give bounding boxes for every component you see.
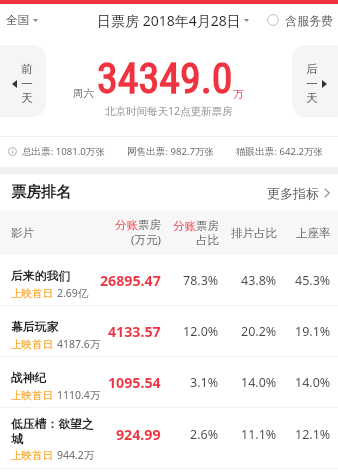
staticText: 上映首日	[11, 389, 53, 402]
staticText: 影片	[11, 226, 34, 240]
staticText: 全国	[6, 13, 29, 27]
button[interactable]: 日票房 2018年4月28日	[97, 4, 338, 36]
staticText: 43.8%	[241, 272, 277, 289]
staticText: 4187.6万	[57, 337, 101, 351]
staticText: 1110.4万	[57, 388, 101, 402]
staticText: 14.0%	[241, 374, 277, 391]
staticText: 前 一 天	[21, 62, 33, 105]
button[interactable]: 后一天	[292, 45, 338, 117]
staticText: 票房排名	[11, 183, 71, 202]
staticText: 分账票房	[173, 219, 219, 233]
staticText: 19.1%	[295, 323, 331, 340]
staticText: 上映首日	[11, 287, 53, 300]
staticText: 12.1%	[295, 426, 331, 443]
staticText: 26895.47	[100, 271, 161, 290]
staticText: 2.6%	[190, 426, 219, 443]
staticText: 后 一 天	[306, 62, 318, 105]
staticText: 更多指标	[267, 185, 319, 201]
staticText: 排片占比	[231, 226, 277, 240]
staticText: 万	[233, 87, 244, 101]
staticText: 分账票房	[115, 218, 161, 232]
button[interactable]: 后来的我们	[0, 255, 338, 306]
staticText: 上映首日	[11, 449, 53, 462]
button[interactable]: 低压槽：欲望之城	[0, 408, 338, 469]
staticText: 低压槽：欲望之城	[11, 417, 103, 446]
staticText: 3.1%	[190, 374, 219, 391]
staticText: 14.0%	[295, 374, 331, 391]
staticText: 1095.54	[108, 373, 161, 392]
staticText: 2.69亿	[57, 286, 89, 300]
staticText: 总出票: 1081.0万张	[22, 145, 106, 158]
staticText: 20.2%	[241, 323, 277, 340]
staticText: 猫眼出票: 642.2万张	[236, 145, 324, 158]
staticText: 12.0%	[183, 323, 219, 340]
staticText: 78.3%	[183, 272, 219, 289]
staticText: 924.99	[116, 425, 161, 444]
button[interactable]: 更多指标	[267, 185, 330, 201]
staticText: 含服务费	[285, 13, 333, 28]
staticText: 幕后玩家	[11, 320, 59, 335]
button[interactable]: 含服务费	[267, 4, 338, 36]
staticText: 后来的我们	[11, 269, 70, 284]
button[interactable]: 幕后玩家	[0, 306, 338, 357]
staticText: 占比	[196, 233, 219, 247]
staticText: 周六	[73, 87, 94, 100]
staticText: 34349.0	[97, 54, 233, 103]
staticText: 战神纪	[11, 371, 47, 386]
staticText: 4133.57	[108, 322, 161, 341]
staticText: 944.2万	[57, 448, 95, 462]
staticText: 网售出票: 982.7万张	[127, 145, 215, 158]
staticText: 上映首日	[11, 338, 53, 351]
staticText: 北京时间每天12点更新票房	[105, 104, 233, 118]
button[interactable]: 战神纪	[0, 357, 338, 408]
button[interactable]: 全国	[6, 4, 338, 36]
staticText: 45.3%	[295, 272, 331, 289]
staticText: 上座率	[296, 226, 331, 240]
button[interactable]: 前一天	[0, 45, 46, 117]
staticText: 日票房 2018年4月28日	[97, 11, 241, 30]
staticText: (万元)	[131, 232, 161, 248]
staticText: 11.1%	[241, 426, 277, 443]
